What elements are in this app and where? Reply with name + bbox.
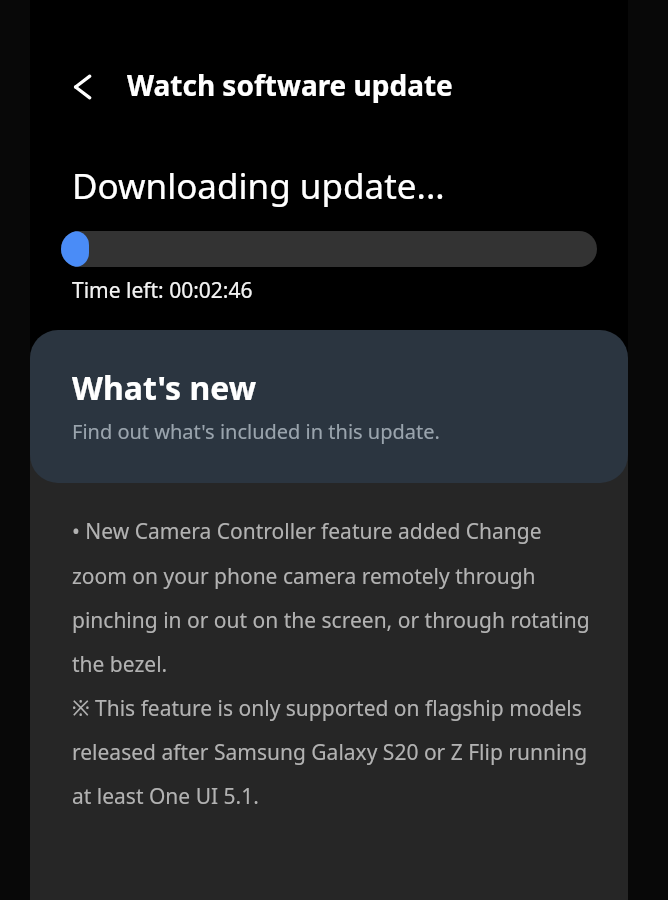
staticText: Downloading update... [72,162,445,210]
staticText: Find out what's included in this update. [72,418,440,445]
button[interactable]: What's new [30,330,628,483]
button[interactable]: Back [51,55,115,119]
staticText: • New Camera Controller feature added Ch… [72,517,592,810]
staticText: Time left: 00:02:46 [72,276,253,305]
staticText: Watch software update [127,66,453,104]
staticText: What's new [72,366,257,410]
